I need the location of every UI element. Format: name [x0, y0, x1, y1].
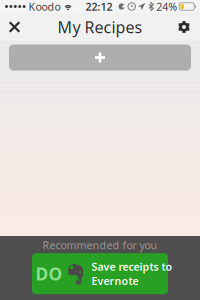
staticText: Save receipts to: [91, 259, 172, 274]
staticText: 22:12: [85, 0, 112, 14]
staticText: Evernote: [91, 274, 138, 288]
button[interactable]: DO: [32, 253, 168, 294]
staticText: My Recipes: [57, 16, 142, 38]
button[interactable]: Settings: [168, 13, 200, 41]
staticText: DO: [35, 262, 62, 285]
button[interactable]: Close: [0, 14, 29, 40]
button[interactable]: Add recipe: [9, 44, 191, 70]
staticText: Recommended for you: [42, 238, 157, 252]
staticText: 24%: [156, 0, 177, 14]
staticText: Koodo: [29, 0, 61, 14]
